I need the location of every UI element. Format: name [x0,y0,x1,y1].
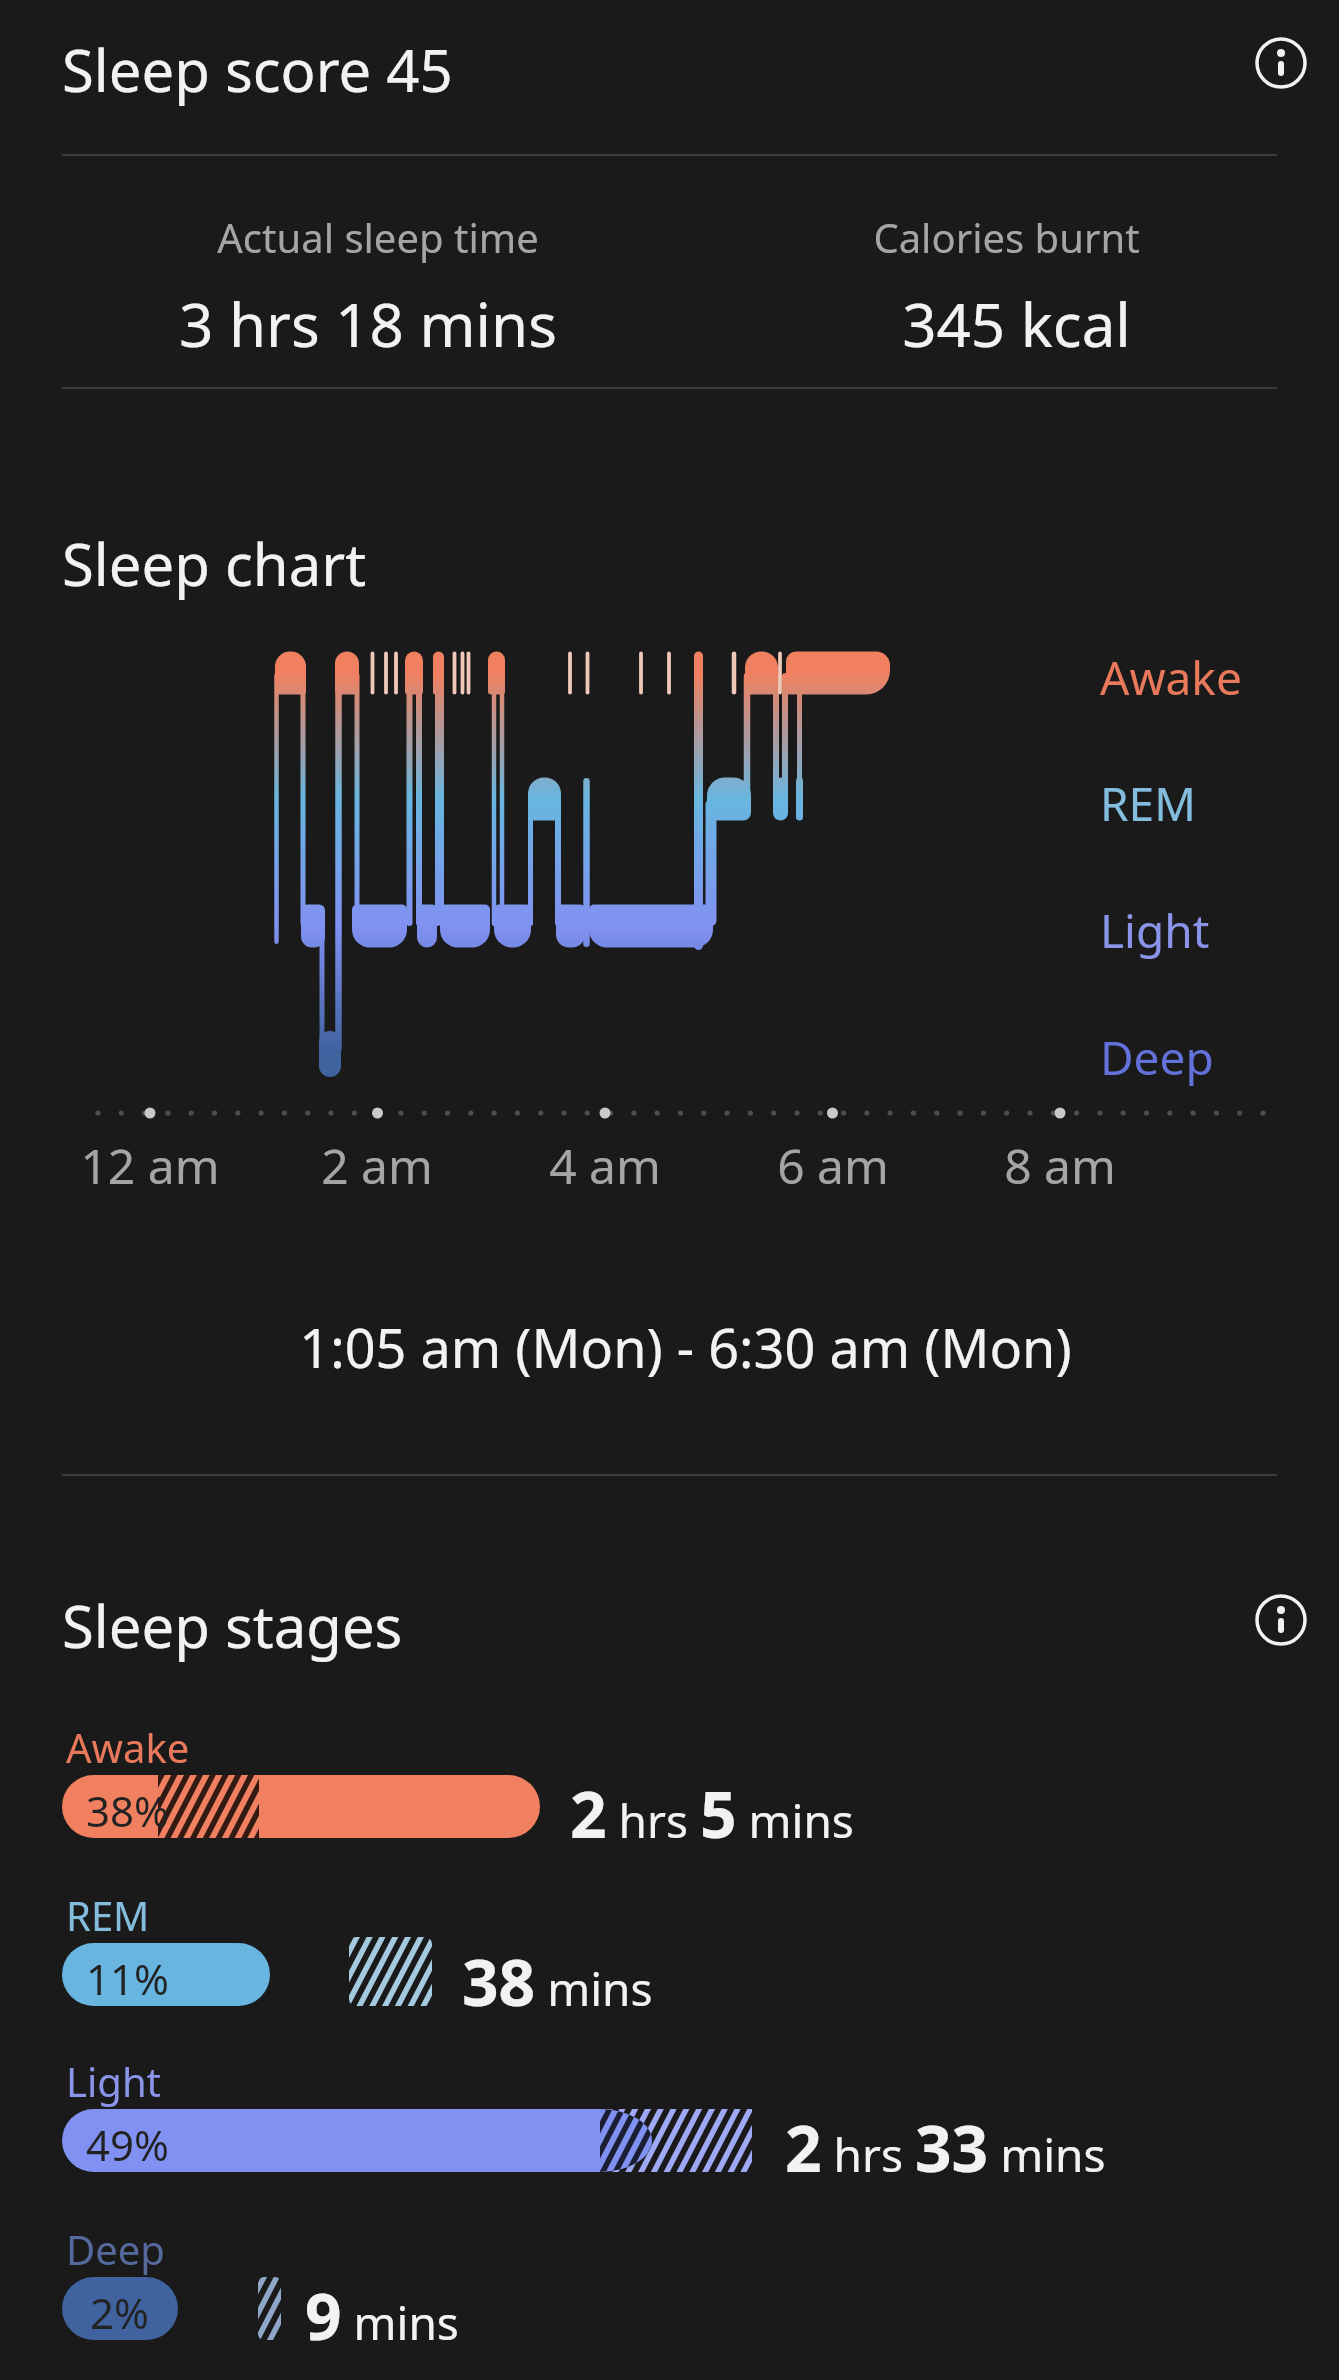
staticText: REM [1100,772,1196,835]
staticText: 38% [86,1782,169,1839]
staticText: 2 am [321,1133,433,1198]
staticText: 4 am [549,1133,661,1198]
staticText: 345 kcal [902,283,1131,365]
staticText: 6 am [777,1133,889,1198]
staticText: 2 hrs 5 mins [570,1770,854,1857]
staticText: 11% [86,1950,169,2007]
staticText: 3 hrs 18 mins [179,283,557,365]
staticText: Awake [66,1720,190,1774]
staticText: 2% [90,2284,149,2341]
staticText: 12 am [80,1133,220,1198]
staticText: Light [66,2054,162,2108]
staticText: 8 am [1004,1133,1116,1198]
staticText: Actual sleep time [217,210,539,264]
button[interactable] [1249,31,1313,95]
staticText: Deep [66,2222,165,2276]
staticText: 38 mins [462,1938,653,2025]
staticText: Calories burnt [873,210,1140,264]
staticText: 9 mins [305,2272,459,2359]
staticText: Sleep chart [62,524,367,603]
staticText: Sleep score 45 [62,30,453,109]
staticText: Light [1100,899,1210,962]
staticText: REM [66,1888,150,1942]
staticText: 49% [86,2116,169,2173]
staticText: Deep [1100,1026,1214,1089]
staticText: 1:05 am (Mon) - 6:30 am (Mon) [299,1310,1072,1384]
staticText: 2 hrs 33 mins [785,2104,1106,2191]
staticText: Sleep stages [62,1586,403,1665]
button[interactable] [1249,1588,1313,1652]
staticText: Awake [1100,646,1242,709]
